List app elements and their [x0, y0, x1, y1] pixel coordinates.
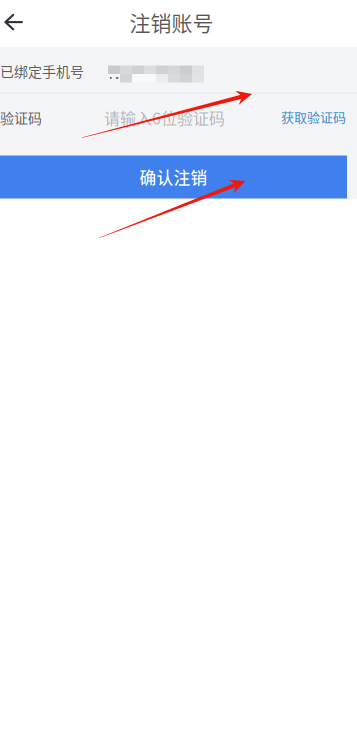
button[interactable]: 确认注销 — [0, 155, 347, 198]
staticText: 请输入6位验证码 — [104, 106, 225, 129]
staticText: 已绑定手机号 — [0, 61, 84, 81]
button[interactable]: Back — [0, 0, 40, 47]
staticText: 注销账号 — [129, 7, 213, 37]
staticText: 验证码 — [0, 107, 42, 128]
staticText: 确认注销 — [139, 165, 207, 189]
staticText: 获取验证码 — [281, 107, 346, 126]
button[interactable]: 获取验证码 — [281, 93, 357, 140]
